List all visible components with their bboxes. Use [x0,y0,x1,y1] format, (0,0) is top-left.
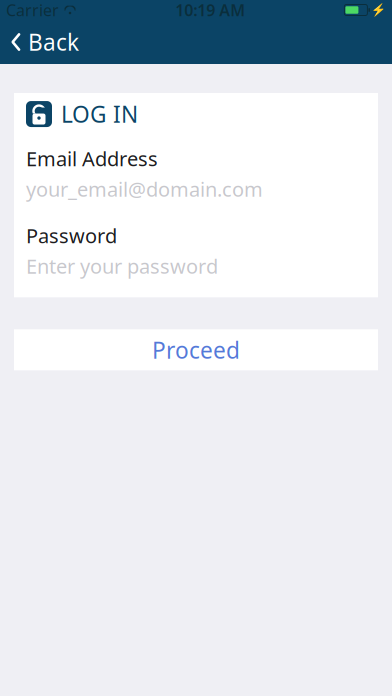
staticText: Proceed [152,335,240,365]
staticText: your_email@domain.com [26,176,263,202]
staticText: Carrier [6,0,59,21]
staticText: 10:19 AM [175,0,245,21]
staticText: Back [28,27,79,57]
staticText: ⚡ [371,3,386,17]
staticText: Email Address [26,145,158,172]
staticText: LOG IN [61,99,138,129]
staticText: Password [26,222,117,249]
button[interactable]: Back [0,20,89,64]
button[interactable]: Proceed [14,329,378,370]
staticText: Enter your password [26,253,218,279]
